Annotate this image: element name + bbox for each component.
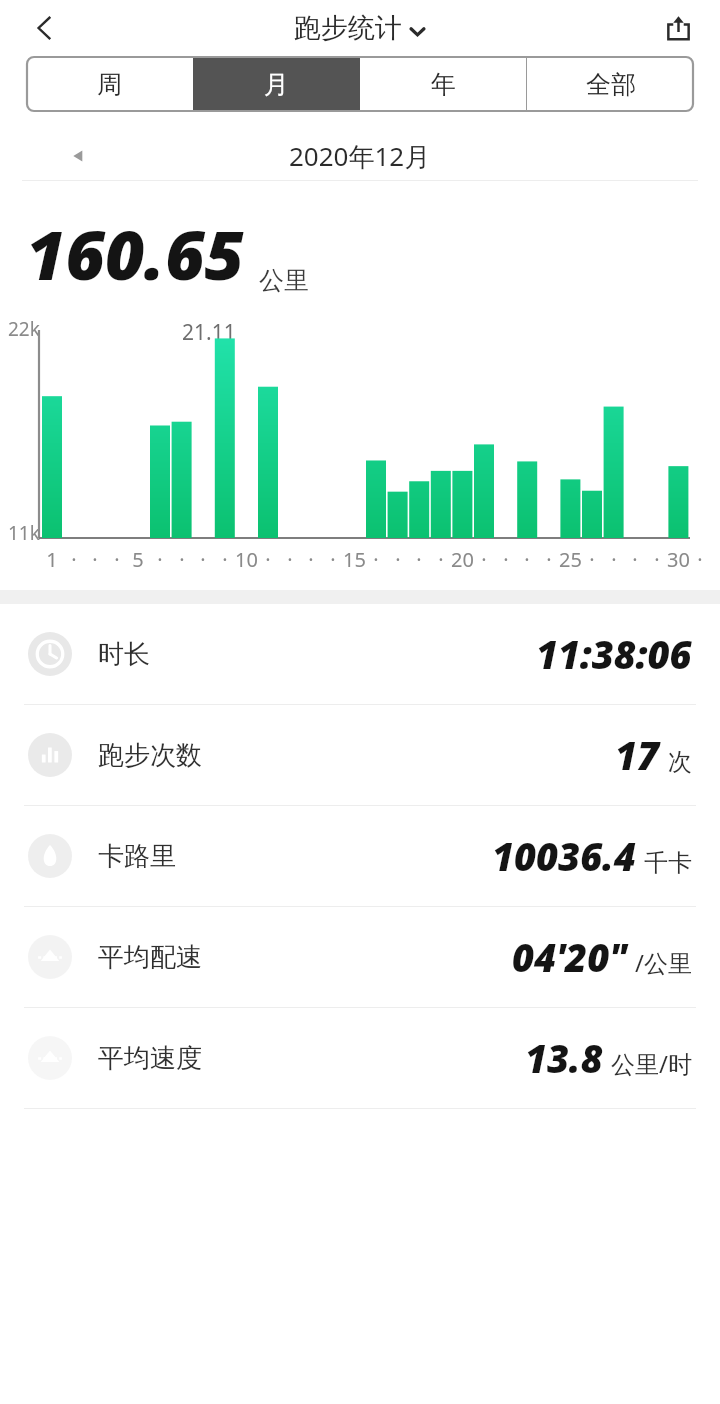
staticText: · [71, 546, 77, 573]
staticText: · [697, 546, 703, 573]
staticText: · [395, 546, 401, 573]
staticText: 平均配速 [98, 941, 202, 974]
staticText: · [524, 546, 530, 573]
staticText: · [373, 546, 379, 573]
staticText: · [287, 546, 293, 573]
staticText: · [265, 546, 271, 573]
staticText: 年 [431, 69, 456, 100]
staticText: 跑步次数 [98, 739, 202, 772]
staticText: · [503, 546, 509, 573]
staticText: · [222, 546, 228, 573]
button[interactable]: Previous month [58, 136, 98, 176]
staticText: 卡路里 [98, 840, 176, 873]
staticText: · [179, 546, 185, 573]
staticText: 11k [8, 520, 40, 546]
staticText: 04'20" [512, 931, 627, 983]
staticText: · [632, 546, 638, 573]
staticText: · [92, 546, 98, 573]
staticText: 20 [451, 546, 474, 573]
staticText: · [654, 546, 660, 573]
staticText: · [114, 546, 120, 573]
staticText: 17 [615, 729, 660, 781]
staticText: · [546, 546, 552, 573]
staticText: 10 [235, 546, 258, 573]
button[interactable]: 年 [360, 56, 527, 112]
staticText: · [481, 546, 487, 573]
staticText: 30 [667, 546, 690, 573]
staticText: 13.8 [525, 1032, 603, 1084]
staticText: /公里 [635, 946, 692, 979]
staticText: 15 [343, 546, 366, 573]
staticText: · [330, 546, 336, 573]
staticText: 2020年12月 [289, 138, 431, 174]
staticText: 跑步统计 [294, 11, 402, 45]
staticText: 公里 [259, 265, 309, 296]
button[interactable]: Share [648, 0, 708, 56]
button[interactable]: Back [14, 0, 74, 56]
button[interactable]: 卡路里 [0, 806, 720, 906]
staticText: · [308, 546, 314, 573]
button[interactable]: 月 [193, 56, 360, 112]
staticText: 公里/时 [611, 1047, 692, 1080]
staticText: 22k [8, 316, 40, 342]
staticText: 10036.4 [492, 830, 636, 882]
staticText: 全部 [586, 69, 636, 100]
button[interactable]: 平均配速 [0, 907, 720, 1007]
button[interactable]: 周 [26, 56, 193, 112]
staticText: 周 [97, 69, 122, 100]
button[interactable]: 时长 [0, 604, 720, 704]
staticText: · [611, 546, 617, 573]
button[interactable]: 跑步统计 [294, 11, 426, 45]
staticText: · [200, 546, 206, 573]
staticText: 月 [264, 69, 289, 100]
staticText: 1 [46, 546, 58, 573]
staticText: 5 [132, 546, 144, 573]
staticText: 时长 [98, 638, 150, 671]
staticText: 11:38:06 [536, 628, 692, 680]
button[interactable]: 平均速度 [0, 1008, 720, 1108]
staticText: · [438, 546, 444, 573]
staticText: 160.65 [26, 207, 245, 300]
staticText: 25 [559, 546, 582, 573]
staticText: · [157, 546, 163, 573]
button[interactable]: 全部 [527, 56, 694, 112]
button[interactable]: 跑步次数 [0, 705, 720, 805]
staticText: 次 [668, 747, 692, 777]
staticText: · [589, 546, 595, 573]
staticText: 千卡 [644, 848, 692, 878]
staticText: · [416, 546, 422, 573]
staticText: 平均速度 [98, 1042, 202, 1075]
staticText: 21.11 [182, 318, 236, 347]
